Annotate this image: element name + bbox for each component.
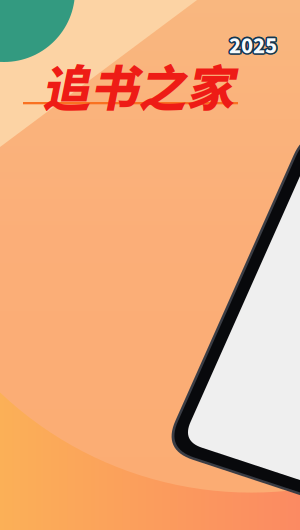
- staticText: 2025: [230, 31, 278, 60]
- staticText: 2025: [228, 31, 276, 60]
- staticText: 2025: [228, 29, 276, 58]
- staticText: 追书之家: [42, 50, 234, 119]
- staticText: 2025: [230, 29, 278, 58]
- staticText: 2025: [229, 30, 277, 59]
- staticText: 2025: [231, 30, 279, 59]
- staticText: 2025: [229, 28, 277, 57]
- staticText: 2025: [229, 32, 277, 61]
- staticText: 2025: [227, 30, 275, 59]
